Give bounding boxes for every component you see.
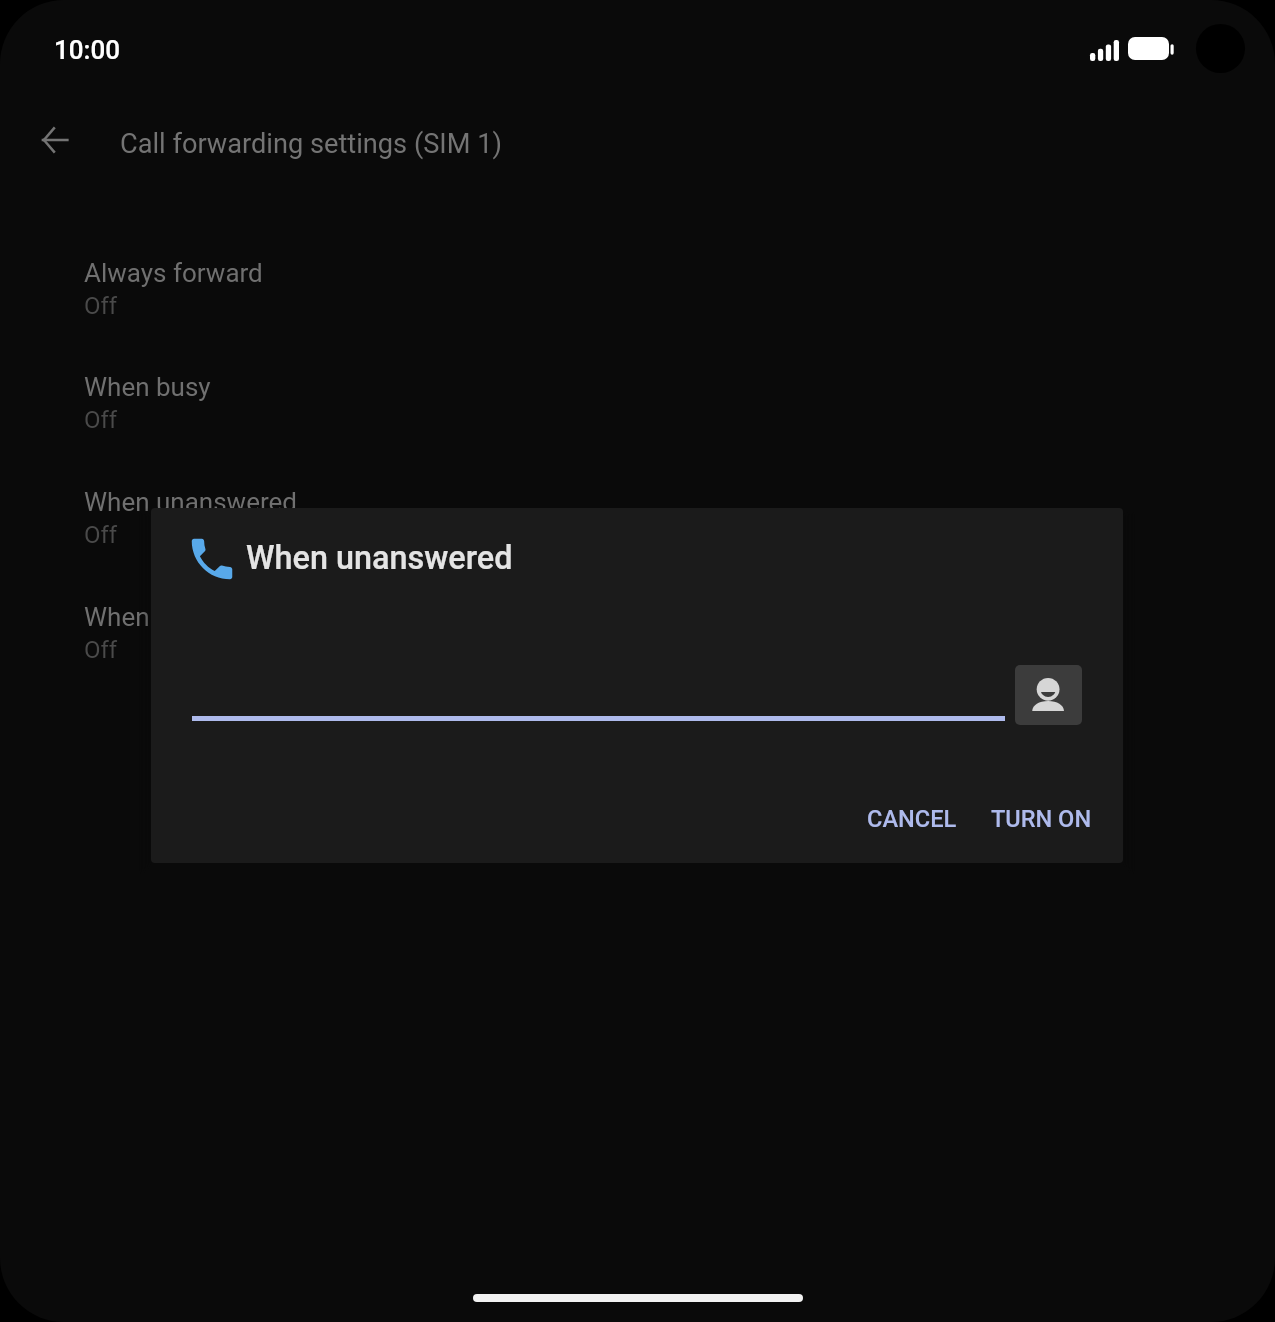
button[interactable]: Choose a contact xyxy=(1015,665,1082,725)
button[interactable]: When busy xyxy=(0,343,1275,457)
button[interactable]: When unreachable xyxy=(0,573,1275,687)
staticText: Off xyxy=(84,292,118,320)
staticText: CANCEL xyxy=(867,805,957,833)
button[interactable]: Back xyxy=(20,105,90,175)
button[interactable]: CANCEL xyxy=(861,797,963,841)
staticText: Off xyxy=(84,636,118,664)
button[interactable]: TURN ON xyxy=(985,797,1098,841)
staticText: TURN ON xyxy=(991,805,1092,833)
staticText: Call forwarding settings (SIM 1) xyxy=(120,128,502,160)
staticText: Off xyxy=(84,406,118,434)
staticText: When unanswered xyxy=(84,487,297,517)
button[interactable]: When unanswered xyxy=(0,458,1275,572)
button[interactable]: Always forward xyxy=(0,229,1275,343)
staticText: When unreachable xyxy=(84,602,298,632)
staticText: 10:00 xyxy=(54,35,121,65)
staticText: Off xyxy=(84,521,118,549)
staticText: Always forward xyxy=(84,258,263,288)
staticText: When busy xyxy=(84,372,211,402)
staticText: When unanswered xyxy=(246,539,513,577)
